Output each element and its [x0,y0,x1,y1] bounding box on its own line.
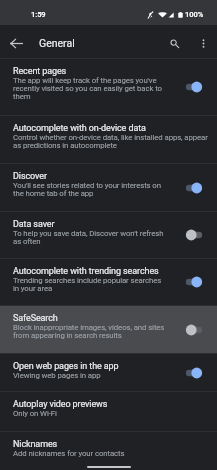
button[interactable]: Off [183,227,205,243]
staticText: Block inappropriate images, videos, and … [13,324,165,340]
button[interactable]: On [183,180,205,196]
button[interactable]: Nicknames [0,432,217,470]
staticText: SafeSearch [13,312,58,324]
staticText: To help you save data, Discover won't re… [13,230,165,246]
staticText: Autocomplete with on-device data [13,122,146,134]
staticText: Open web pages in the app [13,360,119,372]
button[interactable]: Navigate up [1,28,31,58]
button[interactable]: Discover [0,164,217,211]
staticText: Viewing web pages in app [13,372,101,380]
staticText: The app will keep track of the pages you… [13,77,165,101]
staticText: Autocomplete with trending searches [13,265,159,277]
button[interactable]: More options [189,29,217,57]
staticText: Control whether on-device data, like ins… [13,134,209,150]
staticText: Trending searches include popular search… [13,277,165,293]
staticText: Recent pages [13,65,67,77]
button[interactable]: Off [183,322,205,338]
staticText: Add nicknames for your contacts [13,450,125,458]
button[interactable]: Recent pages [0,59,217,115]
staticText: Nicknames [13,438,58,450]
staticText: Discover [13,170,47,182]
button[interactable]: Search [159,28,189,58]
button[interactable]: On [183,365,205,381]
staticText: Data saver [13,218,55,230]
button[interactable]: On [183,79,205,95]
button[interactable]: Open web pages in the app [0,354,217,391]
button[interactable]: Data saver [0,212,217,258]
button[interactable]: On [183,274,205,290]
button[interactable]: Autocomplete with trending searches [0,259,217,305]
staticText: Only on Wi-Fi [13,410,57,418]
staticText: 100% [185,10,204,19]
staticText: General [39,37,75,49]
button[interactable]: Autoplay video previews [0,392,217,431]
staticText: Autoplay video previews [13,398,108,410]
button[interactable]: Autocomplete with on-device data [0,116,217,163]
staticText: You'll see stories related to your inter… [13,182,165,198]
button[interactable]: SafeSearch [0,306,217,353]
staticText: 1:59 [31,10,46,19]
